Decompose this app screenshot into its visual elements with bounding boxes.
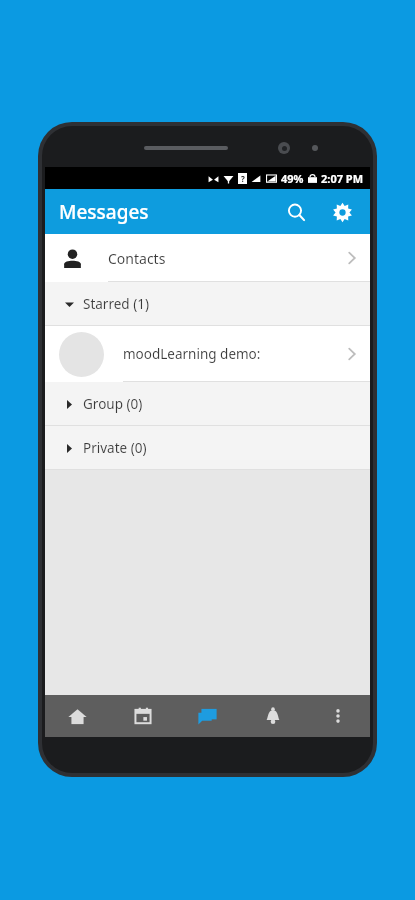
staticText: Messages (59, 199, 149, 225)
staticText: ? (241, 173, 245, 184)
button[interactable]: Notifications (240, 695, 305, 737)
staticText: Starred (1) (83, 295, 149, 313)
button[interactable]: Settings (326, 196, 358, 228)
button[interactable]: Home (45, 695, 110, 737)
button[interactable]: Messages (175, 695, 240, 737)
staticText: 49% (281, 171, 304, 186)
staticText: Group (0) (83, 395, 143, 413)
staticText: Contacts (108, 249, 166, 268)
staticText: moodLearning demo: (123, 345, 261, 363)
button[interactable]: Contacts (45, 234, 370, 282)
button[interactable]: Private (0) (45, 426, 370, 470)
staticText: 2:07 PM (321, 171, 364, 186)
button[interactable]: Starred (1) (45, 282, 370, 326)
staticText: Private (0) (83, 439, 147, 457)
button[interactable]: More options (305, 695, 370, 737)
button[interactable]: Group (0) (45, 382, 370, 426)
button[interactable]: Search (280, 196, 312, 228)
button[interactable]: moodLearning demo: (45, 326, 370, 382)
button[interactable]: Calendar (110, 695, 175, 737)
